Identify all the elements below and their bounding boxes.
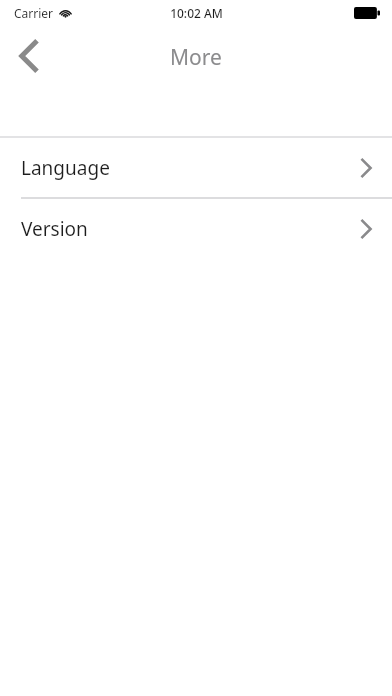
staticText: 10:02 AM [170, 5, 223, 21]
button[interactable]: Language [0, 138, 392, 197]
staticText: Carrier [14, 5, 54, 21]
staticText: More [170, 43, 222, 72]
staticText: Language [21, 155, 110, 181]
button[interactable]: Back [6, 34, 50, 78]
button[interactable]: Version [0, 199, 392, 258]
staticText: Version [21, 216, 88, 242]
